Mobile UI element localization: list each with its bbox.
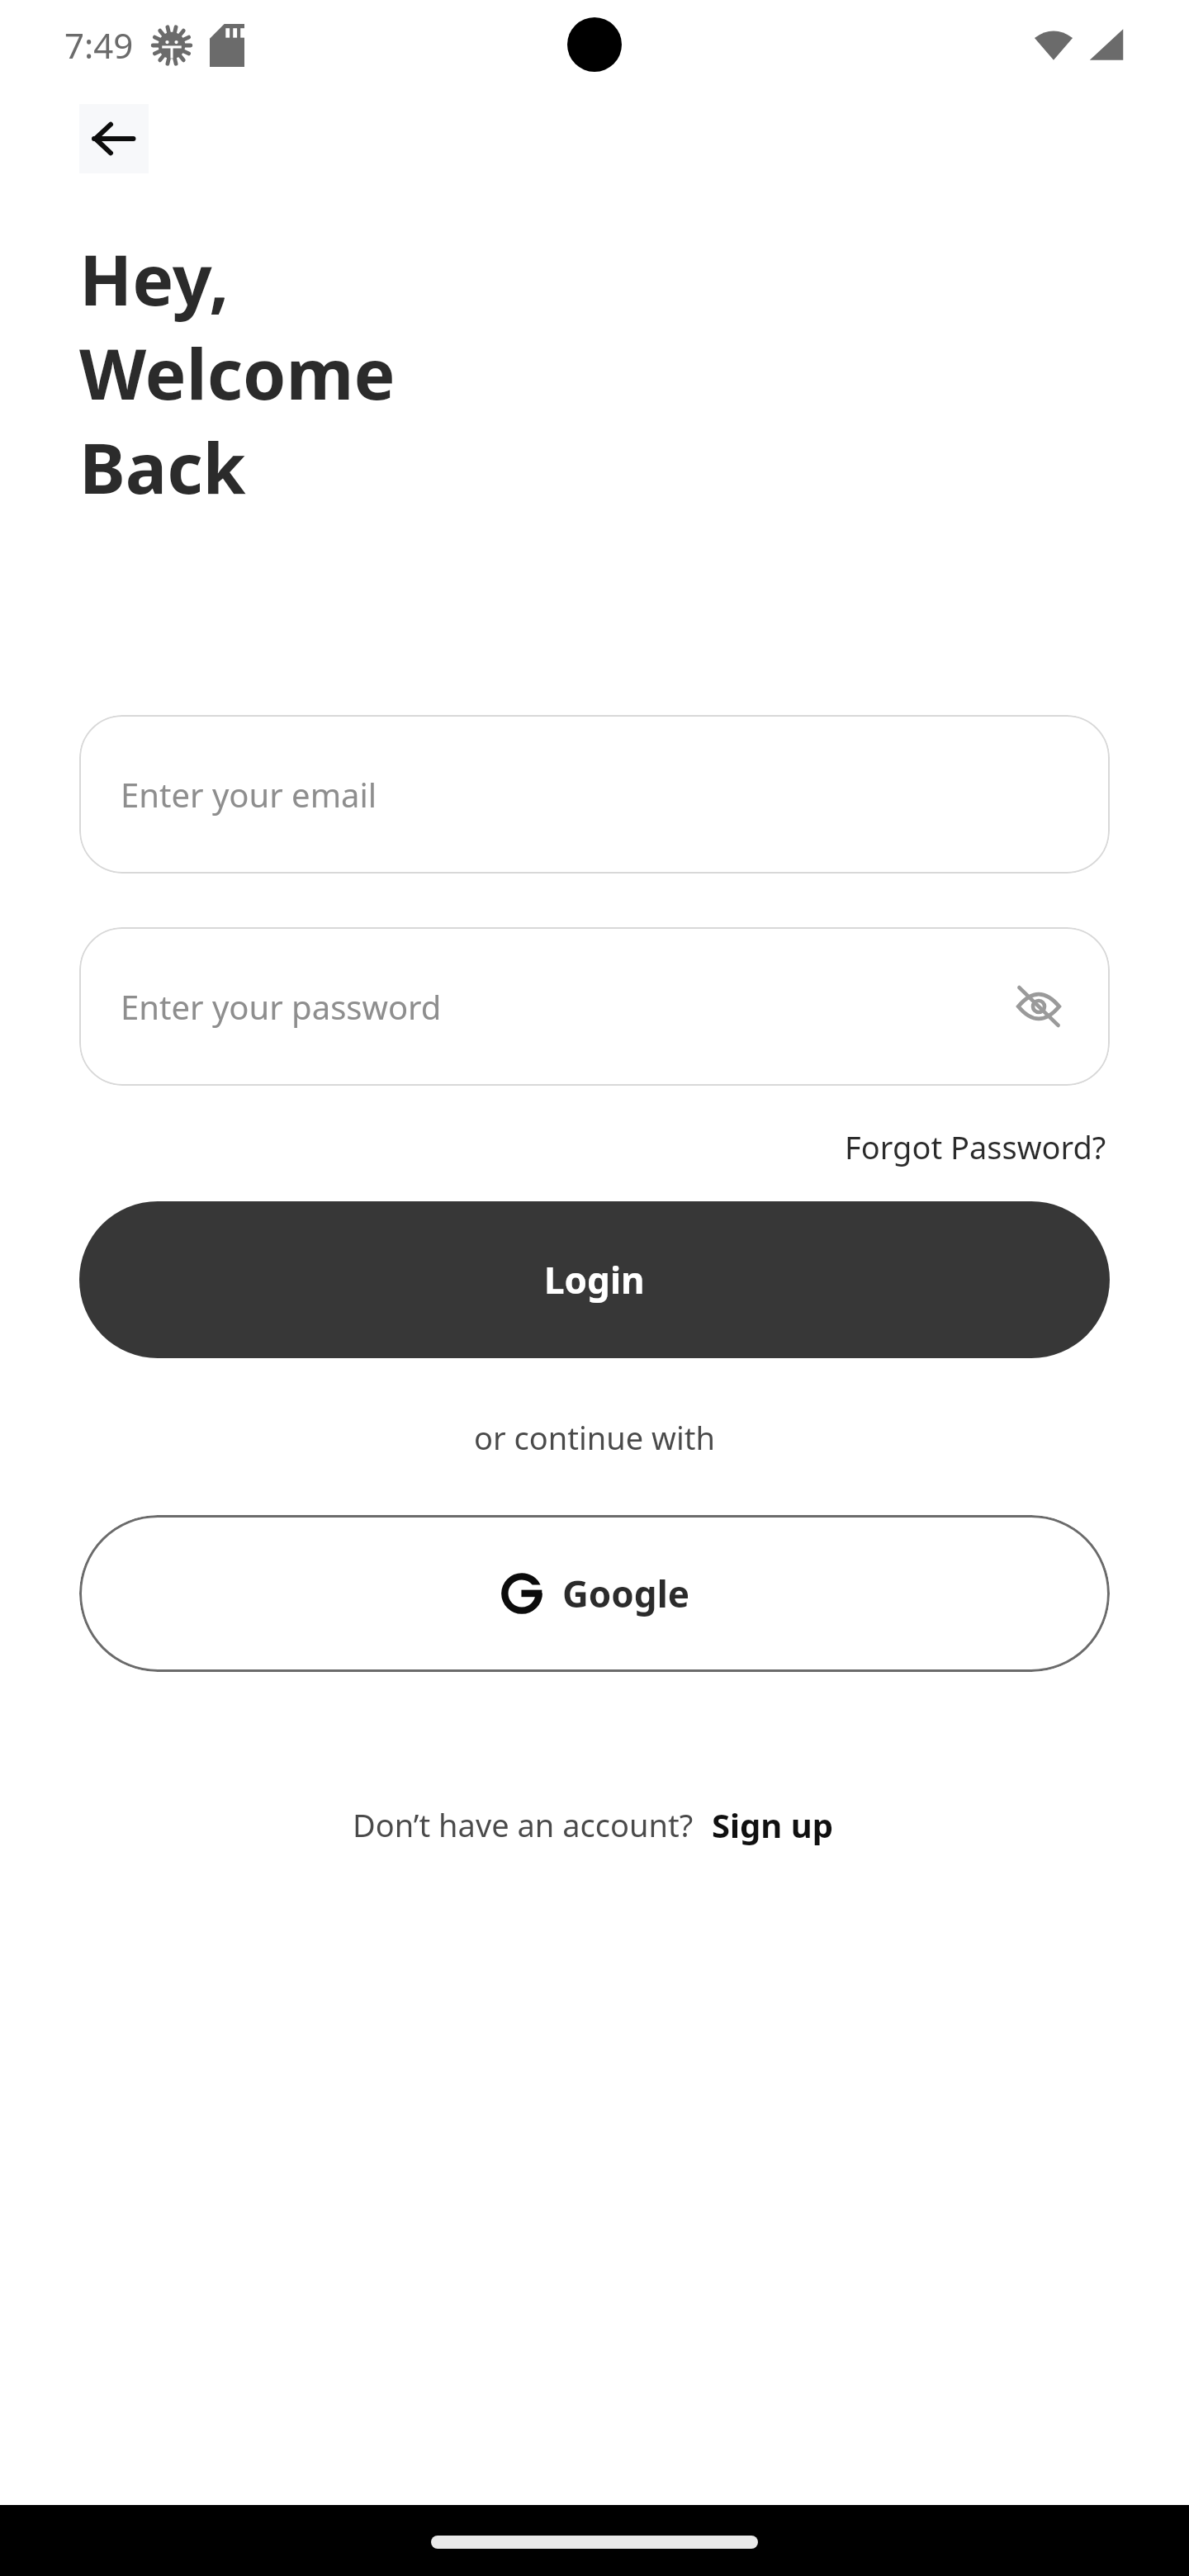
button[interactable]: Forgot Password?	[841, 1119, 1110, 1175]
staticText: Enter your email	[121, 772, 377, 817]
staticText: Sign up	[712, 1802, 833, 1847]
button[interactable]: Google	[79, 1515, 1110, 1672]
staticText: Welcome	[79, 325, 396, 419]
button[interactable]: Login	[79, 1201, 1110, 1358]
staticText: 7:49	[64, 21, 134, 69]
button[interactable]: Sign up	[708, 1796, 836, 1854]
button[interactable]: Home	[431, 2536, 758, 2549]
staticText: Login	[544, 1255, 645, 1305]
staticText: Hey,	[79, 231, 230, 325]
staticText: Google	[562, 1569, 690, 1618]
button[interactable]: Back	[79, 104, 149, 173]
button[interactable]: Toggle password visibility	[1006, 973, 1072, 1039]
staticText: Enter your password	[121, 984, 442, 1029]
button[interactable]: Enter your password	[79, 927, 1110, 1086]
staticText: Forgot Password?	[845, 1125, 1106, 1168]
button[interactable]: Enter your email	[79, 715, 1110, 874]
staticText: or continue with	[474, 1416, 715, 1459]
staticText: Back	[79, 419, 246, 514]
staticText: Don’t have an account?	[353, 1803, 694, 1846]
